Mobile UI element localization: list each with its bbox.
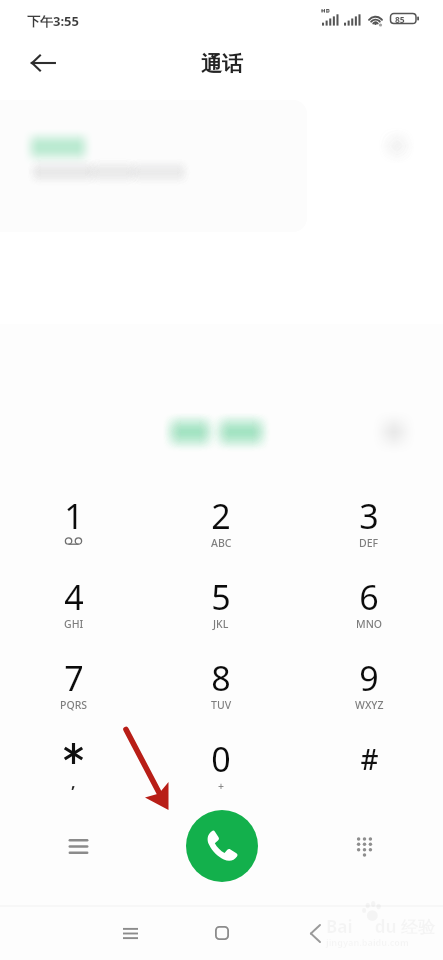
- staticText: 4: [64, 574, 84, 620]
- staticText: 1: [64, 493, 84, 539]
- button[interactable]: #: [295, 718, 443, 799]
- button[interactable]: 3: [295, 475, 443, 556]
- button[interactable]: 8: [147, 637, 295, 718]
- staticText: 5: [211, 574, 231, 620]
- staticText: 85: [395, 14, 405, 26]
- button[interactable]: Back: [292, 910, 338, 956]
- staticText: 通话: [201, 51, 243, 77]
- button[interactable]: 7: [0, 637, 147, 718]
- staticText: 6: [359, 574, 379, 620]
- staticText: ABC: [211, 536, 232, 550]
- staticText: ,: [71, 771, 76, 793]
- staticText: Bai du 经验: [326, 915, 435, 938]
- button[interactable]: Back: [21, 41, 65, 85]
- staticText: PQRS: [60, 698, 88, 712]
- button[interactable]: 5: [147, 556, 295, 637]
- button[interactable]: 2: [147, 475, 295, 556]
- staticText: JKL: [213, 617, 229, 631]
- staticText: 3: [359, 493, 379, 539]
- staticText: 8: [211, 655, 231, 701]
- staticText: 下午3:55: [27, 12, 79, 30]
- button[interactable]: Dialpad: [340, 822, 389, 871]
- staticText: 9: [359, 655, 379, 701]
- staticText: 2: [211, 493, 231, 539]
- staticText: TUV: [211, 698, 232, 712]
- button[interactable]: Recent apps: [107, 910, 153, 956]
- button[interactable]: 1: [0, 475, 147, 556]
- button[interactable]: 6: [295, 556, 443, 637]
- staticText: +: [218, 779, 225, 793]
- button[interactable]: 0: [147, 718, 295, 799]
- button[interactable]: Home: [199, 910, 245, 956]
- staticText: GHI: [64, 617, 84, 631]
- staticText: #: [360, 740, 379, 778]
- staticText: MNO: [356, 617, 383, 631]
- staticText: 7: [64, 655, 84, 701]
- button[interactable]: Call: [186, 810, 258, 882]
- button[interactable]: 9: [295, 637, 443, 718]
- staticText: DEF: [359, 536, 379, 550]
- button[interactable]: ,: [0, 718, 147, 799]
- button[interactable]: 4: [0, 556, 147, 637]
- staticText: WXYZ: [355, 698, 384, 712]
- staticText: 0: [211, 736, 231, 782]
- button[interactable]: Call log menu: [54, 822, 103, 871]
